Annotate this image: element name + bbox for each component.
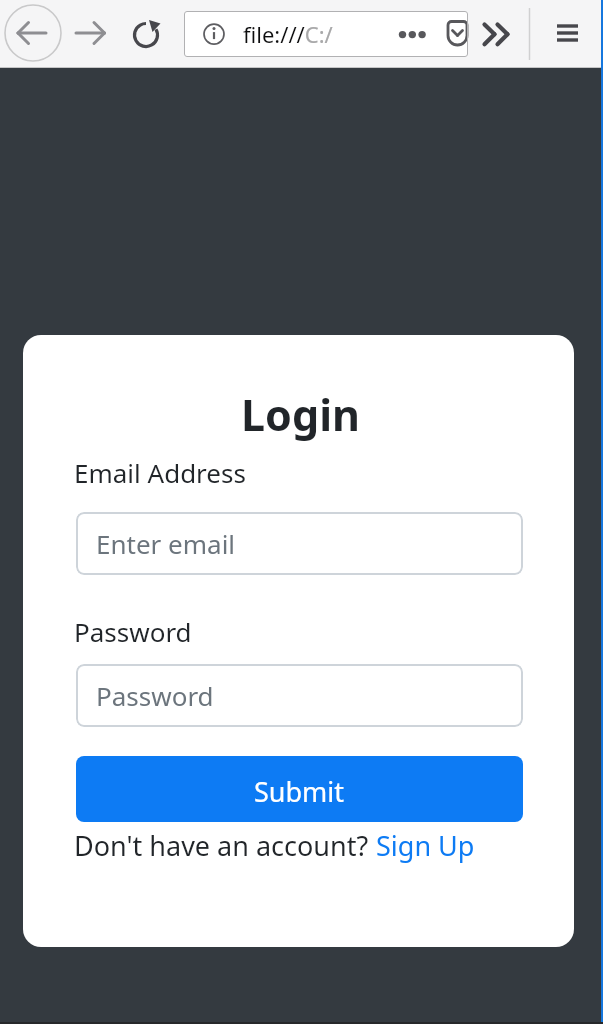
button[interactable] [474, 11, 518, 55]
button[interactable]: Enter email [76, 512, 523, 575]
staticText: Don't have an account? [74, 827, 376, 864]
staticText: file:///C:/ [243, 19, 333, 49]
staticText: Enter email [96, 526, 236, 561]
staticText: Login [25, 385, 574, 444]
button[interactable] [124, 11, 168, 55]
staticText: Password [96, 678, 214, 713]
button[interactable]: Sign Up [376, 827, 475, 864]
staticText: Email Address [74, 455, 246, 490]
staticText: Submit [254, 773, 345, 810]
button[interactable]: file:///C:/ [184, 11, 468, 57]
staticText: Password [74, 614, 192, 649]
button[interactable]: Submit [76, 756, 523, 822]
button[interactable] [68, 11, 112, 55]
button[interactable]: Password [76, 664, 523, 727]
button[interactable] [5, 5, 61, 61]
button[interactable] [548, 11, 592, 55]
